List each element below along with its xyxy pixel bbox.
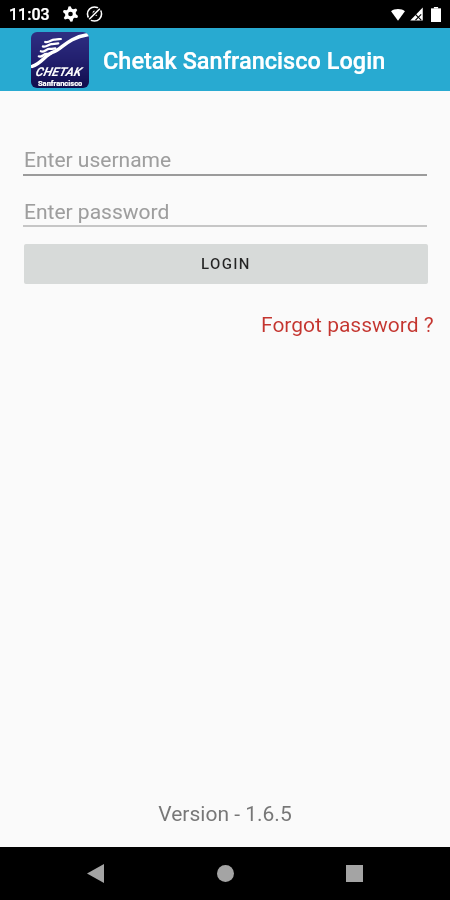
button[interactable]: Home [200,847,250,900]
button[interactable]: Back [70,847,120,900]
button[interactable]: Chetak Sanfrancisco logo [31,32,89,88]
staticText: Sanfrancisco [38,79,83,88]
button[interactable]: Enter username [23,140,427,176]
staticText: Chetak Sanfrancisco Login [103,47,386,75]
button[interactable]: Enter password [23,192,427,227]
staticText: Enter password [24,200,170,225]
button[interactable]: Forgot password ? [234,309,434,341]
button[interactable]: LOGIN [24,244,428,284]
staticText: Version - 1.6.5 [0,802,450,827]
button[interactable]: Recent apps [329,847,379,900]
staticText: 11:03 [9,5,50,24]
staticText: Enter username [24,148,172,173]
staticText: CHETAK [35,65,81,79]
staticText: Forgot password ? [261,313,434,338]
staticText: LOGIN [201,255,251,273]
